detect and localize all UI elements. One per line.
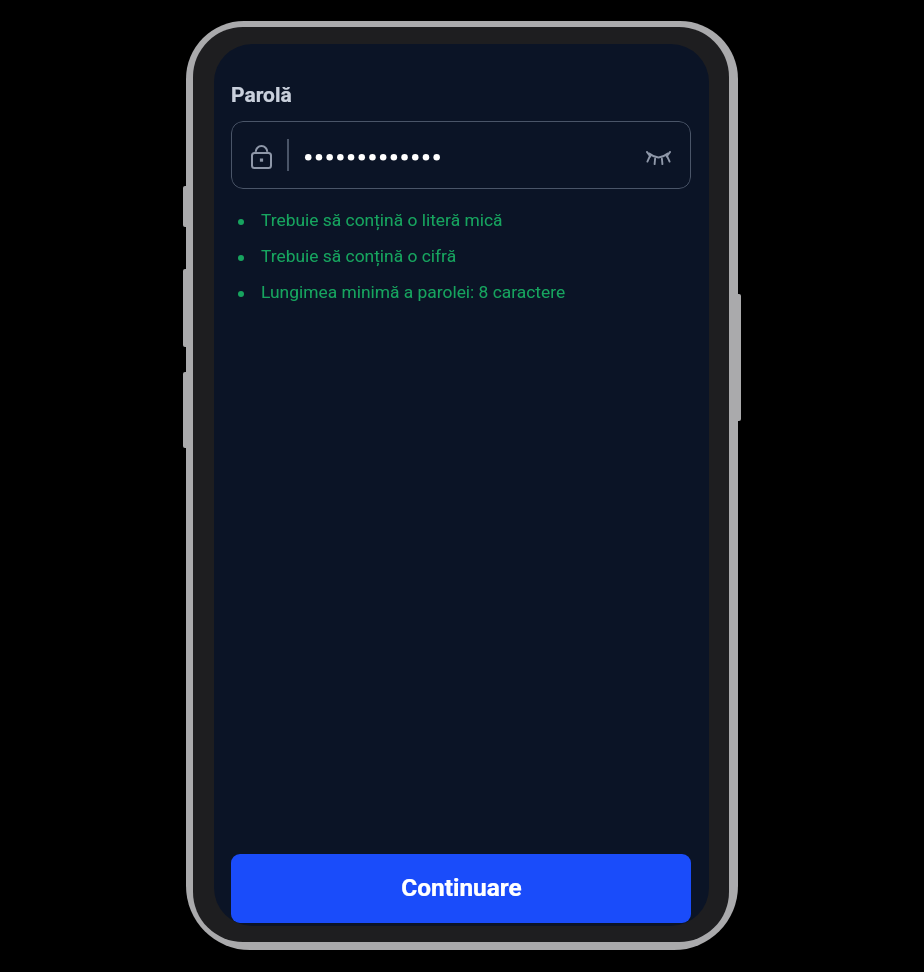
button[interactable]: Show password xyxy=(638,133,682,177)
staticText: Trebuie să conțină o cifră xyxy=(261,246,457,266)
staticText: Parolă xyxy=(231,83,292,108)
staticText: Trebuie să conțină o literă mică xyxy=(261,210,503,230)
staticText: Lungimea minimă a parolei: 8 caractere xyxy=(261,282,566,302)
staticText: Continuare xyxy=(401,873,522,902)
button[interactable]: Show password xyxy=(231,121,691,189)
button[interactable]: Continuare xyxy=(231,854,691,923)
